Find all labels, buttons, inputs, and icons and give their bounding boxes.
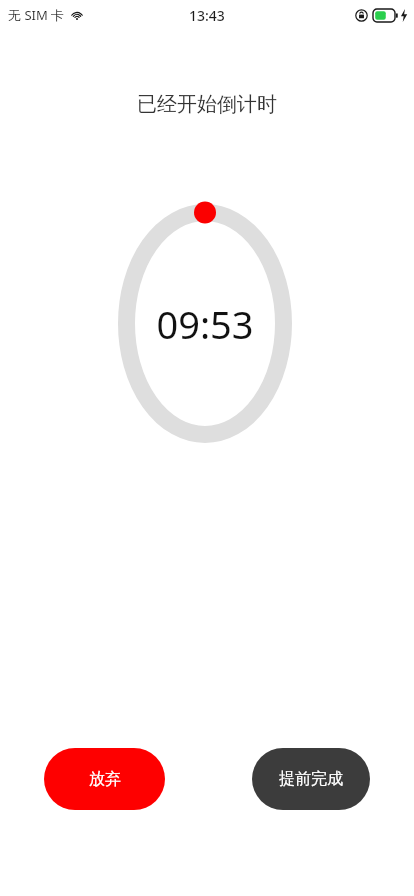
- staticText: 放弃: [89, 769, 121, 789]
- button[interactable]: 提前完成: [252, 748, 370, 810]
- staticText: 提前完成: [279, 769, 343, 789]
- staticText: 已经开始倒计时: [137, 92, 277, 117]
- staticText: 13:43: [189, 6, 225, 25]
- staticText: 无 SIM 卡: [8, 6, 65, 24]
- staticText: 09:53: [156, 298, 254, 350]
- button[interactable]: 放弃: [44, 748, 165, 810]
